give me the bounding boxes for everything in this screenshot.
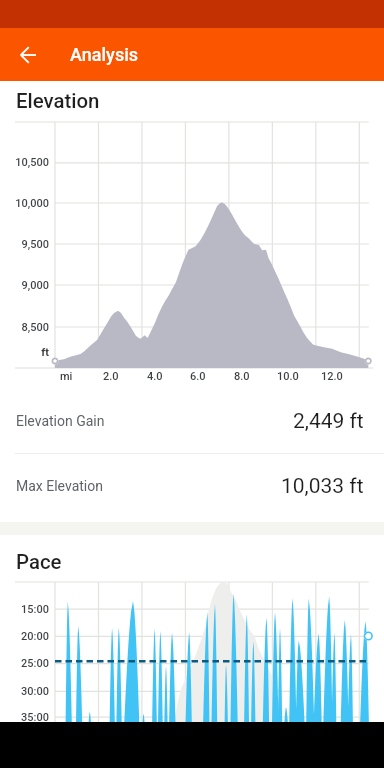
staticText: 10,000	[0, 197, 49, 210]
staticText: 6.0	[190, 370, 206, 383]
staticText: 4.0	[147, 370, 163, 383]
staticText: 15:00	[0, 603, 49, 616]
staticText: 2.0	[103, 370, 119, 383]
staticText: mi	[60, 370, 73, 383]
staticText: 20:00	[0, 630, 49, 643]
staticText: 8,500	[0, 321, 49, 334]
staticText: Max Elevation	[16, 478, 103, 494]
staticText: 2,449 ft	[293, 409, 364, 434]
staticText: 9,000	[0, 279, 49, 292]
button[interactable]: Back	[4, 31, 52, 79]
staticText: 12.0	[321, 370, 343, 383]
button[interactable]: Max Elevation	[0, 453, 384, 519]
staticText: 8.0	[234, 370, 250, 383]
staticText: Pace	[16, 550, 62, 574]
staticText: 10,500	[0, 156, 49, 169]
staticText: 35:00	[0, 711, 49, 724]
staticText: 9,500	[0, 238, 49, 251]
staticText: 10,033 ft	[281, 474, 364, 499]
staticText: Elevation Gain	[16, 413, 105, 429]
staticText: Elevation	[16, 89, 100, 113]
staticText: 25:00	[0, 657, 49, 670]
button[interactable]: Elevation Gain	[0, 388, 384, 454]
staticText: Analysis	[70, 44, 139, 65]
staticText: ft	[0, 346, 49, 359]
staticText: 30:00	[0, 685, 49, 698]
staticText: 10.0	[277, 370, 299, 383]
